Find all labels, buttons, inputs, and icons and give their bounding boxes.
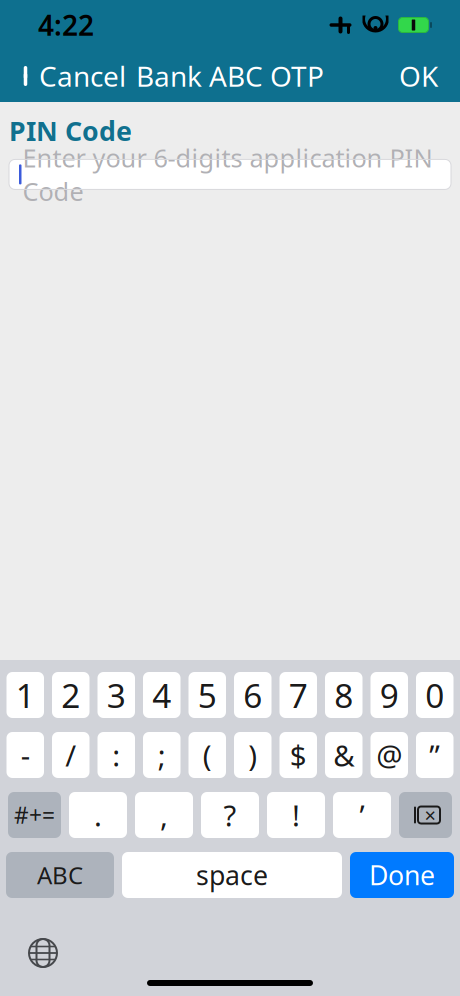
staticText: 8 bbox=[334, 673, 353, 717]
staticText: 6 bbox=[243, 673, 262, 717]
button[interactable]: ) bbox=[234, 732, 271, 778]
staticText: ) bbox=[248, 735, 257, 774]
button[interactable]: ? bbox=[201, 792, 259, 838]
button[interactable]: OK bbox=[383, 49, 454, 103]
button[interactable]: 5 bbox=[188, 672, 226, 718]
button[interactable]: Delete bbox=[399, 792, 452, 838]
button[interactable]: Done bbox=[350, 852, 454, 898]
button[interactable]: Next keyboard bbox=[0, 930, 70, 976]
staticText: PIN Code bbox=[9, 113, 132, 148]
button[interactable]: 4 bbox=[143, 672, 180, 718]
staticText: 9 bbox=[380, 673, 399, 717]
staticText: 4:22 bbox=[38, 6, 94, 44]
staticText: - bbox=[21, 735, 30, 774]
staticText: OK bbox=[399, 57, 438, 95]
staticText: space bbox=[196, 857, 268, 893]
button[interactable]: 2 bbox=[52, 672, 89, 718]
staticText: ; bbox=[158, 735, 166, 774]
staticText: $ bbox=[290, 735, 307, 774]
staticText: . bbox=[94, 795, 102, 834]
staticText: ? bbox=[223, 795, 236, 834]
staticText: 4 bbox=[152, 673, 171, 717]
staticText: @ bbox=[376, 735, 402, 774]
button[interactable]: - bbox=[6, 732, 44, 778]
staticText: 3 bbox=[107, 673, 126, 717]
button[interactable]: @ bbox=[370, 732, 408, 778]
staticText: / bbox=[65, 735, 76, 774]
button[interactable]: 8 bbox=[325, 672, 362, 718]
staticText: , bbox=[160, 795, 168, 834]
staticText: Cancel bbox=[39, 57, 126, 95]
staticText: 0 bbox=[425, 673, 444, 717]
button[interactable]: 7 bbox=[279, 672, 317, 718]
staticText: 2 bbox=[61, 673, 80, 717]
staticText: : bbox=[112, 735, 120, 774]
button[interactable]: 6 bbox=[234, 672, 271, 718]
staticText: 7 bbox=[289, 673, 308, 717]
staticText: Done bbox=[369, 857, 435, 893]
button[interactable]: 0 bbox=[416, 672, 453, 718]
button[interactable]: 3 bbox=[97, 672, 135, 718]
staticText: × bbox=[424, 802, 435, 828]
staticText: ! bbox=[292, 795, 300, 834]
staticText: 5 bbox=[198, 673, 217, 717]
button[interactable]: . bbox=[69, 792, 127, 838]
button[interactable]: , bbox=[135, 792, 193, 838]
staticText: ” bbox=[429, 735, 440, 774]
staticText: ( bbox=[203, 735, 212, 774]
staticText: Bank ABC OTP bbox=[136, 57, 324, 95]
button[interactable]: & bbox=[325, 732, 362, 778]
button[interactable]: ; bbox=[143, 732, 180, 778]
staticText: #+= bbox=[14, 800, 55, 830]
staticText: ’ bbox=[359, 795, 364, 834]
button[interactable]: ’ bbox=[333, 792, 391, 838]
button[interactable]: space bbox=[122, 852, 342, 898]
button[interactable]: 1 bbox=[6, 672, 44, 718]
button[interactable]: ABC bbox=[6, 852, 114, 898]
staticText: & bbox=[333, 735, 354, 774]
button[interactable]: $ bbox=[279, 732, 317, 778]
staticText: ABC bbox=[37, 859, 83, 891]
button[interactable]: ! bbox=[267, 792, 325, 838]
staticText: 1 bbox=[16, 673, 35, 717]
button[interactable]: #+= bbox=[8, 792, 61, 838]
staticText: Enter your 6-digits application PIN Code bbox=[22, 141, 432, 208]
button[interactable]: : bbox=[97, 732, 135, 778]
button[interactable]: ” bbox=[416, 732, 453, 778]
button[interactable]: Cancel bbox=[6, 49, 140, 103]
button[interactable]: / bbox=[52, 732, 89, 778]
button[interactable]: ( bbox=[188, 732, 226, 778]
button[interactable]: 9 bbox=[370, 672, 408, 718]
